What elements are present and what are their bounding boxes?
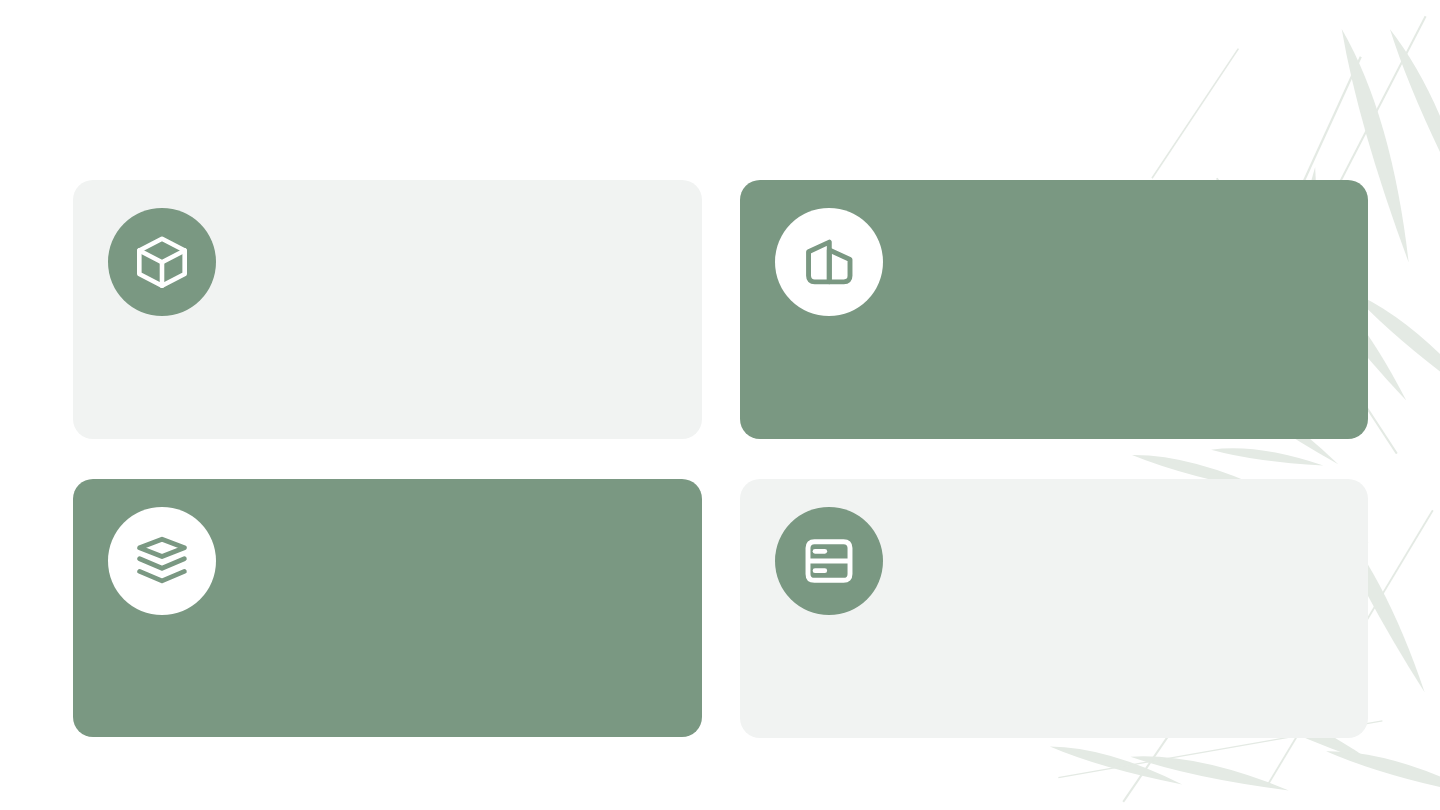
button[interactable]: Layers	[73, 479, 702, 737]
button[interactable]: Package	[73, 180, 702, 439]
button[interactable]: Storage	[775, 507, 883, 615]
button[interactable]: Layers	[108, 507, 216, 615]
button[interactable]: Package	[108, 208, 216, 316]
button[interactable]: Storage	[740, 479, 1368, 738]
button[interactable]: Library	[740, 180, 1368, 439]
button[interactable]: Library	[775, 208, 883, 316]
